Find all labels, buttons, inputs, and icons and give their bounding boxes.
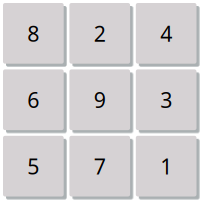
button[interactable]: 5 [3,136,64,196]
staticText: 8 [27,19,39,47]
button[interactable]: 3 [136,69,196,130]
staticText: 5 [27,152,39,180]
button[interactable]: 6 [3,69,64,130]
staticText: 2 [94,19,106,47]
button[interactable]: 2 [69,3,130,64]
staticText: 7 [94,152,106,180]
button[interactable]: 8 [3,3,64,64]
staticText: 6 [27,86,39,114]
button[interactable]: 7 [69,136,130,196]
button[interactable]: 1 [136,136,196,196]
staticText: 3 [160,86,172,114]
staticText: 1 [160,152,172,180]
staticText: 4 [160,19,172,47]
button[interactable]: 9 [69,69,130,130]
staticText: 9 [94,86,106,114]
button[interactable]: 4 [136,3,196,64]
